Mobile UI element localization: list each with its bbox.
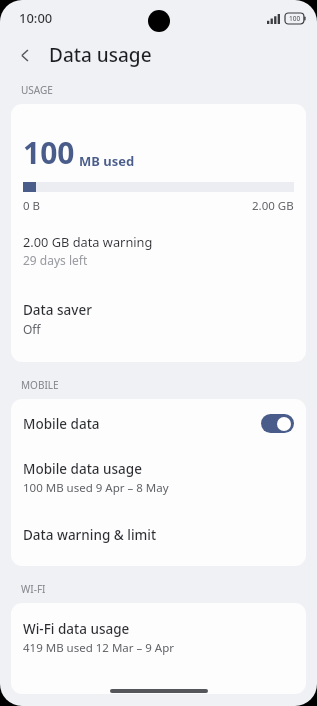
button[interactable]: Wi-Fi data usage bbox=[11, 603, 306, 694]
button[interactable]: Data saver bbox=[11, 300, 306, 338]
staticText: MB used bbox=[79, 152, 135, 170]
staticText: Wi-Fi data usage bbox=[23, 620, 130, 638]
staticText: 2.00 GB bbox=[252, 198, 294, 214]
staticText: 0 B bbox=[23, 198, 41, 214]
staticText: Data saver bbox=[23, 301, 92, 319]
staticText: Off bbox=[23, 321, 41, 337]
staticText: MOBILE bbox=[21, 378, 59, 392]
staticText: 100 MB used 9 Apr – 8 May bbox=[23, 480, 169, 496]
staticText: 100 bbox=[289, 14, 301, 23]
button[interactable]: Mobile data bbox=[11, 399, 306, 447]
button[interactable]: Mobile data usage bbox=[11, 460, 306, 496]
staticText: Mobile data bbox=[23, 415, 261, 433]
staticText: 419 MB used 12 Mar – 9 Apr bbox=[23, 640, 175, 656]
button[interactable]: Data warning & limit bbox=[11, 526, 306, 544]
staticText: Data warning & limit bbox=[23, 526, 157, 544]
staticText: 100 bbox=[23, 132, 75, 173]
staticText: 10:00 bbox=[19, 9, 53, 27]
staticText: WI-FI bbox=[21, 582, 46, 596]
staticText: Mobile data usage bbox=[23, 460, 142, 478]
staticText: 2.00 GB data warning bbox=[23, 233, 153, 250]
staticText: USAGE bbox=[21, 83, 53, 97]
staticText: 29 days left bbox=[23, 252, 88, 268]
staticText: Data usage bbox=[49, 42, 152, 68]
button[interactable]: Back bbox=[8, 38, 42, 72]
button[interactable]: Mobile data toggle bbox=[261, 414, 294, 433]
button[interactable]: 2.00 GB data warning bbox=[11, 232, 306, 269]
